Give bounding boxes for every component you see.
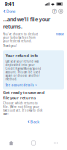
staticText: Your refund info [5,53,37,58]
staticText: ? [53,9,55,14]
button[interactable]: Back [25,117,42,126]
button[interactable]: Done [0,8,18,14]
staticText: Thank you! [3,44,17,48]
staticText: Revisit [56,32,64,36]
button[interactable]: Revisit [56,32,64,36]
staticText: You've chosen to deduct your TurboTax fe… [3,32,38,43]
staticText: Done [6,9,15,14]
button[interactable]: Help [51,8,58,14]
button[interactable]: See account details [5,81,62,87]
staticText: …and we'll file your returns. [3,16,50,30]
staticText: Get ready to save and file your returns [3,90,45,100]
staticText: Back [30,119,39,124]
button[interactable]: Documents [22,136,45,150]
button[interactable]: Home [0,136,22,150]
staticText: 9:41 [4,0,14,8]
staticText: Choose which returns to file. We're not … [3,102,42,116]
staticText: See account details [5,83,33,87]
button[interactable]: Menu [58,8,64,14]
staticText: Last year your refund was deposited into… [5,60,41,81]
